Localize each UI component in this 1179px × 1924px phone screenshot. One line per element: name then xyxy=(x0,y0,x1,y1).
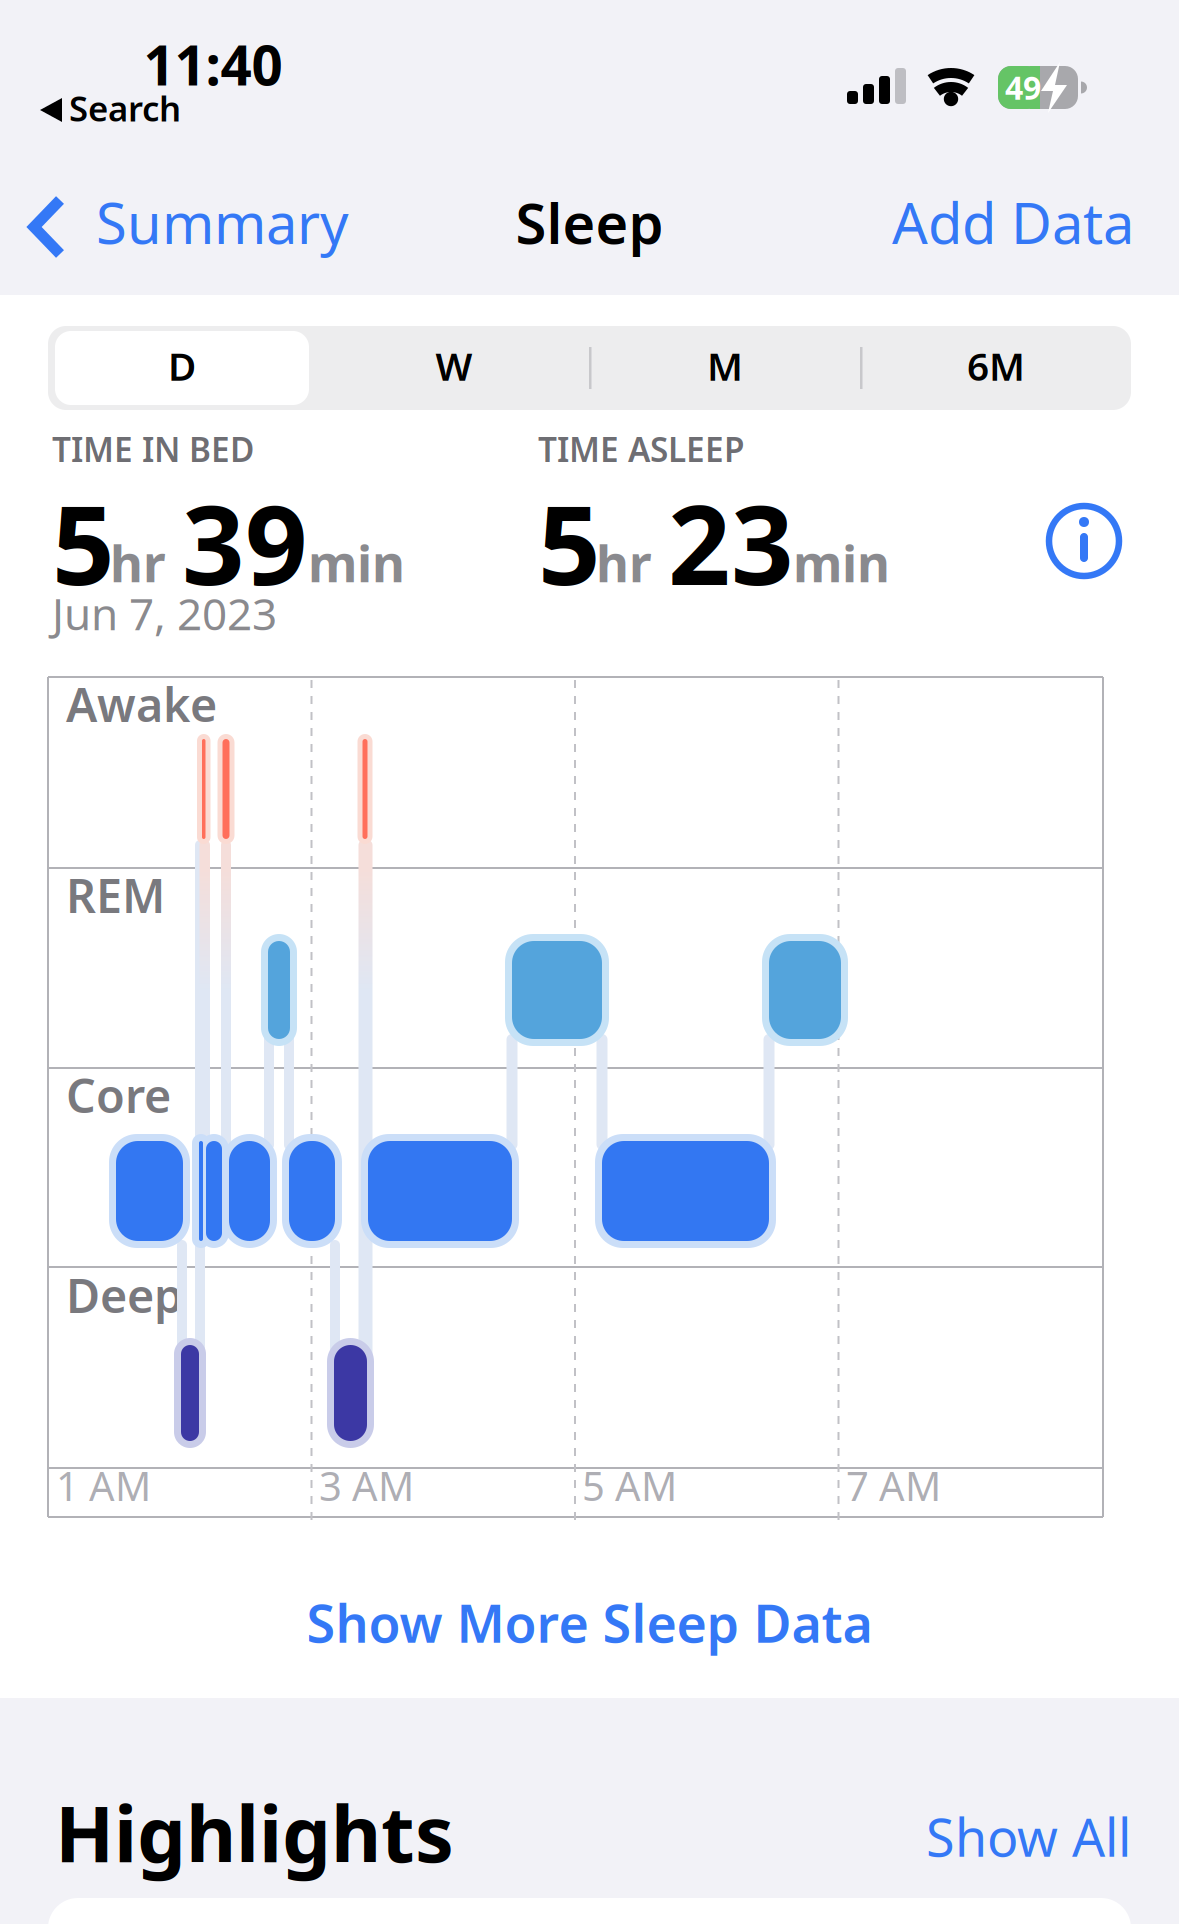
staticText: Core xyxy=(66,1064,171,1126)
staticText: Sleep xyxy=(515,185,663,259)
staticText: 6M xyxy=(967,340,1025,391)
staticText: W xyxy=(435,340,472,391)
staticText: min xyxy=(793,529,890,596)
staticText: M xyxy=(707,340,743,391)
staticText: 5 AM xyxy=(582,1459,677,1512)
staticText: Awake xyxy=(66,673,217,735)
staticText: Search xyxy=(69,85,181,131)
staticText: min xyxy=(308,529,405,596)
staticText: TIME IN BED xyxy=(52,427,254,471)
staticText: hr xyxy=(596,529,652,596)
staticText: 1 AM xyxy=(56,1459,151,1512)
staticText: Deep xyxy=(66,1264,183,1326)
staticText: TIME ASLEEP xyxy=(538,427,745,471)
staticText: REM xyxy=(66,864,165,926)
staticText: 7 AM xyxy=(846,1459,941,1512)
staticText: 5 xyxy=(538,470,601,615)
staticText: Summary xyxy=(96,185,349,259)
staticText: Highlights xyxy=(55,1781,454,1884)
staticText: 5 xyxy=(52,470,115,615)
staticText: 49 xyxy=(1005,66,1041,108)
staticText: hr xyxy=(110,529,166,596)
staticText: Show All xyxy=(926,1802,1131,1871)
staticText: 3 AM xyxy=(319,1459,414,1512)
staticText: 39 xyxy=(182,470,308,615)
staticText: D xyxy=(168,340,196,391)
staticText: Jun 7, 2023 xyxy=(52,584,277,642)
staticText: Show More Sleep Data xyxy=(306,1588,872,1657)
staticText: Add Data xyxy=(892,185,1134,259)
staticText: 11:40 xyxy=(143,28,282,101)
staticText: 23 xyxy=(668,470,794,615)
